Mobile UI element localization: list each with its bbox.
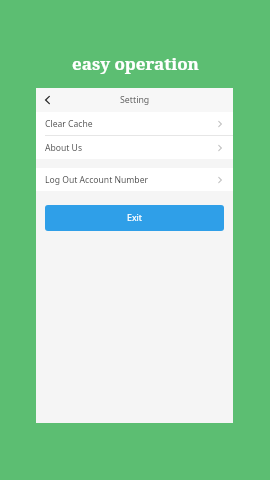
- staticText: Setting: [120, 94, 150, 106]
- button[interactable]: Exit: [45, 205, 224, 231]
- staticText: Clear Cache: [45, 118, 93, 130]
- button[interactable]: About Us: [36, 136, 233, 159]
- button[interactable]: Log Out Account Number: [36, 168, 233, 191]
- staticText: Exit: [127, 212, 142, 224]
- button[interactable]: Clear Cache: [36, 112, 233, 135]
- staticText: About Us: [45, 142, 83, 154]
- staticText: Log Out Account Number: [45, 174, 149, 186]
- button[interactable]: Back: [36, 88, 60, 112]
- staticText: easy operation: [72, 52, 199, 75]
